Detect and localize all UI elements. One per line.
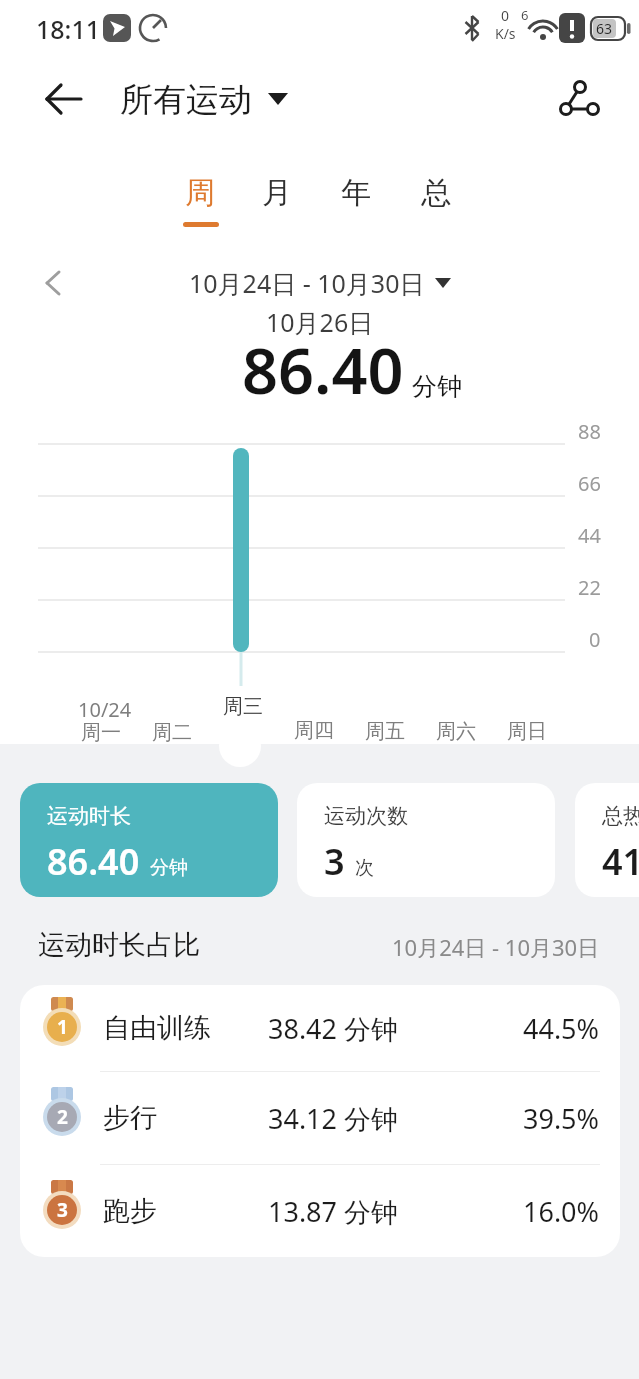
staticText: 39.5% [523,1100,600,1137]
staticText: 1 [57,1014,68,1040]
staticText: 22 [578,574,601,598]
staticText: 66 [578,470,601,494]
staticText: 10/24 [78,696,132,723]
staticText: 周四 [294,718,334,743]
staticText: 34.12 分钟 [268,1100,399,1137]
staticText: 步行 [103,1101,268,1135]
staticText: 10月26日 [266,305,374,339]
staticText: 周一 [81,720,121,745]
staticText: 周六 [436,719,476,744]
staticText: 周二 [152,720,192,745]
staticText: 周五 [365,719,405,744]
staticText: 周 [185,174,215,212]
staticText: 运动时长占比 [38,928,200,962]
staticText: 所有运动 [120,79,252,121]
staticText: 16.0% [523,1193,600,1230]
staticText: 总热量 [602,803,639,829]
staticText: 周日 [507,719,547,744]
staticText: 总 [421,174,451,212]
staticText: 分钟 [412,371,462,402]
staticText: 10月24日 - 10月30日 [392,932,600,958]
staticText: 跑步 [103,1194,268,1228]
staticText: 412 [602,837,639,886]
staticText: 86.40 [242,327,404,413]
staticText: 自由训练 [103,1011,268,1045]
staticText: 88 [578,418,601,442]
staticText: 年 [341,174,371,212]
staticText: 38.42 分钟 [268,1010,399,1047]
staticText: 运动时长 [47,803,131,829]
staticText: 周三 [223,694,263,719]
staticText: 18:11 [36,12,101,46]
staticText: 3 [324,837,345,886]
staticText: 44.5% [523,1010,600,1047]
staticText: 10月24日 - 10月30日 [189,266,425,300]
staticText: 63 [596,19,613,38]
staticText: 0 [501,6,510,24]
staticText: 3 [57,1197,68,1223]
staticText: 6 [521,6,529,24]
staticText: 运动次数 [324,803,408,829]
staticText: 分钟 [150,856,188,880]
staticText: 月 [262,174,292,212]
staticText: 2 [57,1104,68,1130]
staticText: 13.87 分钟 [268,1193,399,1230]
staticText: 44 [578,522,601,546]
staticText: 0 [589,626,601,650]
staticText: 次 [355,856,374,880]
staticText: K/s [495,24,516,42]
staticText: 86.40 [47,837,140,886]
